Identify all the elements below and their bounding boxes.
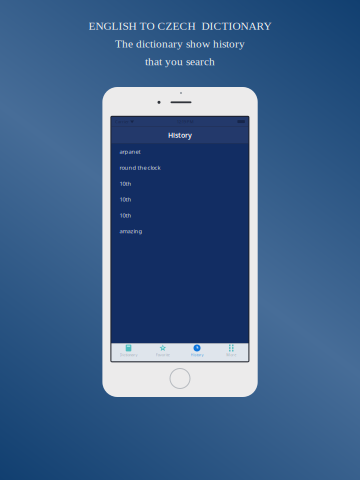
button[interactable]: arpanet (111, 144, 248, 160)
button[interactable]: amazing (111, 223, 248, 239)
button[interactable]: 10th (111, 191, 248, 207)
button[interactable]: Favorite (146, 343, 180, 361)
button[interactable]: Dictionary (111, 343, 146, 361)
staticText: 10th (119, 179, 131, 187)
button[interactable]: History (180, 343, 214, 361)
button[interactable]: More (214, 343, 248, 361)
staticText: round the clock (119, 164, 160, 171)
staticText: History (190, 352, 203, 357)
staticText: The dictionary show history (115, 37, 245, 50)
staticText: History (168, 130, 192, 140)
button[interactable]: round the clock (111, 160, 248, 175)
staticText: More (226, 352, 236, 357)
staticText: ENGLISH TO CZECH DICTIONARY (88, 20, 271, 32)
staticText: Favorite (156, 352, 170, 357)
staticText: Dictionary (119, 352, 137, 357)
button[interactable]: 10th (111, 207, 248, 223)
staticText: Carrier (115, 119, 129, 124)
staticText: arpanet (119, 148, 140, 155)
staticText: 12:19 PM (177, 119, 194, 124)
staticText: 10th (119, 195, 131, 203)
staticText: 10th (119, 211, 131, 219)
button[interactable]: 10th (111, 175, 248, 191)
staticText: amazing (119, 227, 142, 235)
staticText: that you search (145, 55, 215, 68)
